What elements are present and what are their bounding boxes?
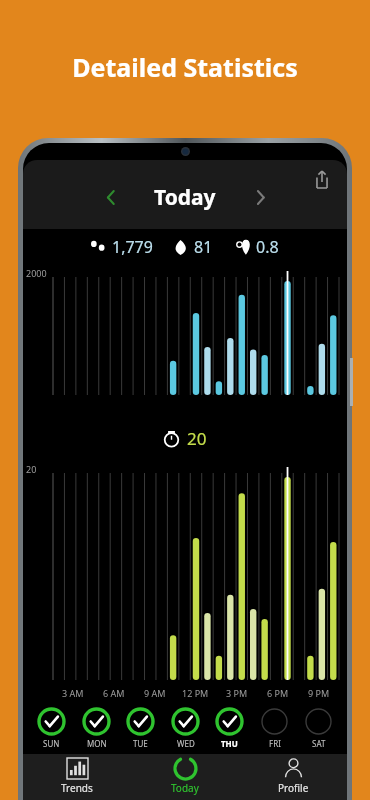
staticText: 3 AM: [62, 687, 84, 699]
staticText: Profile: [278, 781, 309, 795]
staticText: Today: [171, 781, 199, 795]
staticText: 20: [187, 427, 207, 450]
staticText: 81: [194, 236, 213, 258]
staticText: WED: [177, 738, 195, 749]
staticText: 20: [26, 463, 37, 475]
staticText: 6 PM: [267, 687, 289, 699]
staticText: SUN: [43, 738, 60, 749]
button[interactable]: Previous day: [95, 182, 125, 212]
button[interactable]: FRI: [260, 707, 289, 749]
staticText: 12 PM: [182, 687, 209, 699]
staticText: SAT: [312, 738, 326, 749]
staticText: Detailed Statistics: [0, 50, 370, 84]
staticText: 1,779: [112, 236, 153, 258]
staticText: Today: [154, 183, 216, 212]
button[interactable]: Today: [131, 754, 239, 800]
staticText: 2000: [26, 267, 47, 279]
button[interactable]: Trends: [23, 754, 131, 800]
button[interactable]: SUN: [37, 707, 66, 749]
staticText: Trends: [61, 781, 93, 795]
staticText: 0.8: [256, 236, 279, 258]
staticText: 3 PM: [226, 687, 248, 699]
staticText: 9 PM: [308, 687, 330, 699]
button[interactable]: MON: [82, 707, 111, 749]
staticText: FRI: [269, 738, 281, 749]
button[interactable]: Next day: [245, 182, 275, 212]
staticText: MON: [87, 738, 107, 749]
button[interactable]: Today: [125, 183, 245, 212]
button[interactable]: 0.8: [235, 236, 279, 258]
button[interactable]: Profile: [239, 754, 347, 800]
button[interactable]: WED: [171, 707, 200, 749]
staticText: TUE: [133, 738, 148, 749]
button[interactable]: THU: [215, 707, 244, 749]
button[interactable]: Share: [309, 166, 335, 192]
button[interactable]: SAT: [304, 707, 333, 749]
button[interactable]: 1,779: [91, 236, 153, 258]
button[interactable]: TUE: [126, 707, 155, 749]
staticText: THU: [221, 738, 238, 749]
button[interactable]: 81: [173, 236, 213, 258]
staticText: 9 AM: [144, 687, 166, 699]
staticText: 6 AM: [103, 687, 125, 699]
